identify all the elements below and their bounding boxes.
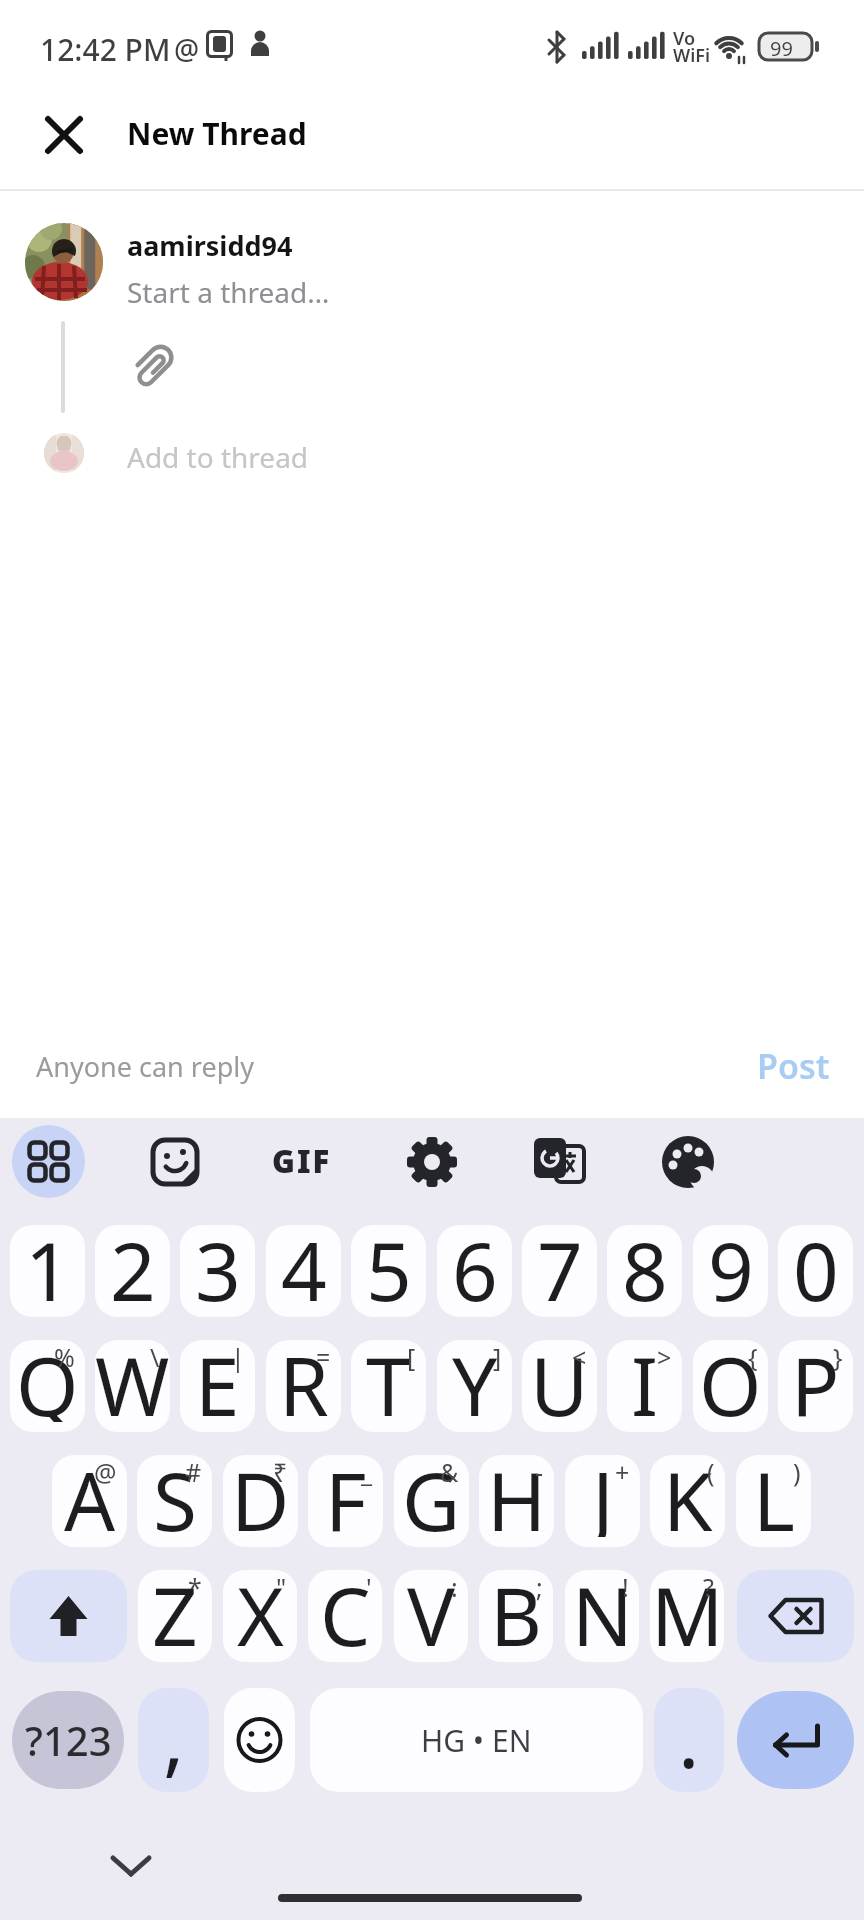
staticText: U bbox=[530, 1340, 589, 1422]
staticText: T bbox=[366, 1340, 411, 1422]
button[interactable]: L bbox=[736, 1455, 811, 1547]
button[interactable] bbox=[737, 1691, 854, 1789]
staticText: . bbox=[678, 1688, 700, 1786]
staticText: M bbox=[651, 1570, 724, 1652]
staticText: Y bbox=[452, 1340, 498, 1422]
staticText: 0 bbox=[793, 1225, 839, 1307]
staticText: < bbox=[572, 1340, 587, 1374]
staticText: aamirsidd94 bbox=[127, 227, 293, 264]
button[interactable]: 2 bbox=[95, 1225, 170, 1317]
staticText: F bbox=[325, 1455, 367, 1537]
button[interactable] bbox=[12, 1125, 85, 1198]
staticText: Z bbox=[152, 1570, 198, 1652]
button[interactable]: 1 bbox=[10, 1225, 85, 1317]
button[interactable]: G bbox=[394, 1455, 469, 1547]
button[interactable] bbox=[150, 1137, 200, 1187]
button[interactable]: ?123 bbox=[12, 1691, 124, 1789]
button[interactable]: 0 bbox=[778, 1225, 853, 1317]
staticText: W bbox=[95, 1340, 170, 1422]
button[interactable]: 6 bbox=[437, 1225, 512, 1317]
staticText: 4 bbox=[281, 1225, 327, 1307]
staticText: [ bbox=[407, 1340, 416, 1374]
staticText: S bbox=[153, 1455, 197, 1537]
button[interactable]: 4 bbox=[266, 1225, 341, 1317]
button[interactable]: GIF bbox=[262, 1130, 342, 1192]
button[interactable]: M bbox=[650, 1570, 724, 1662]
staticText: _ bbox=[361, 1455, 373, 1489]
button[interactable]: , bbox=[138, 1688, 209, 1792]
staticText: & bbox=[440, 1455, 459, 1489]
staticText: 7 bbox=[537, 1225, 583, 1307]
button[interactable]: A bbox=[52, 1455, 127, 1547]
button[interactable]: C bbox=[308, 1570, 382, 1662]
staticText: X bbox=[237, 1570, 284, 1652]
button[interactable]: W bbox=[95, 1340, 170, 1432]
button[interactable] bbox=[532, 1134, 588, 1190]
button[interactable]: H bbox=[479, 1455, 554, 1547]
staticText: - bbox=[535, 1455, 544, 1489]
button[interactable]: R bbox=[266, 1340, 341, 1432]
staticText: Q bbox=[16, 1340, 79, 1422]
button[interactable]: Z bbox=[138, 1570, 212, 1662]
button[interactable] bbox=[44, 115, 84, 155]
staticText: ] bbox=[493, 1340, 502, 1374]
button[interactable]: 5 bbox=[351, 1225, 426, 1317]
button[interactable]: D bbox=[223, 1455, 298, 1547]
button[interactable]: HG • EN bbox=[310, 1688, 643, 1792]
button[interactable] bbox=[25, 223, 103, 301]
button[interactable]: Y bbox=[437, 1340, 512, 1432]
staticText: Add to thread bbox=[127, 438, 309, 476]
button[interactable]: Q bbox=[10, 1340, 85, 1432]
button[interactable]: I bbox=[607, 1340, 682, 1432]
button[interactable]: . bbox=[654, 1688, 724, 1792]
staticText: 9 bbox=[708, 1225, 754, 1307]
staticText: L bbox=[753, 1455, 795, 1537]
button[interactable]: P bbox=[778, 1340, 853, 1432]
button[interactable]: T bbox=[351, 1340, 426, 1432]
staticText: % bbox=[54, 1340, 75, 1374]
staticText: New Thread bbox=[127, 113, 307, 154]
staticText: 2 bbox=[110, 1225, 156, 1307]
button[interactable]: X bbox=[223, 1570, 297, 1662]
staticText: A bbox=[64, 1455, 116, 1537]
staticText: O bbox=[699, 1340, 762, 1422]
staticText: B bbox=[490, 1570, 542, 1652]
button[interactable] bbox=[658, 1134, 718, 1194]
button[interactable]: K bbox=[650, 1455, 725, 1547]
button[interactable]: N bbox=[565, 1570, 639, 1662]
staticText: P bbox=[791, 1340, 840, 1422]
staticText: K bbox=[663, 1455, 713, 1537]
button[interactable]: E bbox=[180, 1340, 255, 1432]
button[interactable]: 8 bbox=[607, 1225, 682, 1317]
staticText: ( bbox=[707, 1455, 715, 1489]
staticText: G bbox=[402, 1455, 461, 1537]
staticText: , bbox=[163, 1688, 185, 1786]
staticText: V bbox=[407, 1570, 455, 1652]
button[interactable] bbox=[737, 1570, 854, 1662]
button[interactable]: 7 bbox=[522, 1225, 597, 1317]
button[interactable]: 9 bbox=[693, 1225, 768, 1317]
staticText: Post bbox=[757, 1043, 830, 1089]
staticText: + bbox=[615, 1455, 630, 1489]
staticText: > bbox=[657, 1340, 672, 1374]
staticText: Vo bbox=[673, 26, 696, 51]
staticText: Anyone can reply bbox=[36, 1048, 254, 1085]
button[interactable]: B bbox=[479, 1570, 553, 1662]
button[interactable]: Post bbox=[630, 1036, 830, 1096]
button[interactable]: S bbox=[137, 1455, 212, 1547]
button[interactable]: 3 bbox=[180, 1225, 255, 1317]
button[interactable]: U bbox=[522, 1340, 597, 1432]
button[interactable]: V bbox=[394, 1570, 468, 1662]
staticText: R bbox=[279, 1340, 329, 1422]
button[interactable] bbox=[128, 344, 174, 390]
button[interactable] bbox=[106, 1848, 156, 1884]
button[interactable]: O bbox=[693, 1340, 768, 1432]
staticText: 1 bbox=[25, 1225, 71, 1307]
staticText: ! bbox=[622, 1570, 629, 1604]
button[interactable]: F bbox=[308, 1455, 383, 1547]
button[interactable]: J bbox=[565, 1455, 640, 1547]
staticText: = bbox=[316, 1340, 331, 1374]
button[interactable] bbox=[224, 1688, 295, 1792]
button[interactable] bbox=[404, 1134, 460, 1190]
button[interactable] bbox=[10, 1570, 127, 1662]
